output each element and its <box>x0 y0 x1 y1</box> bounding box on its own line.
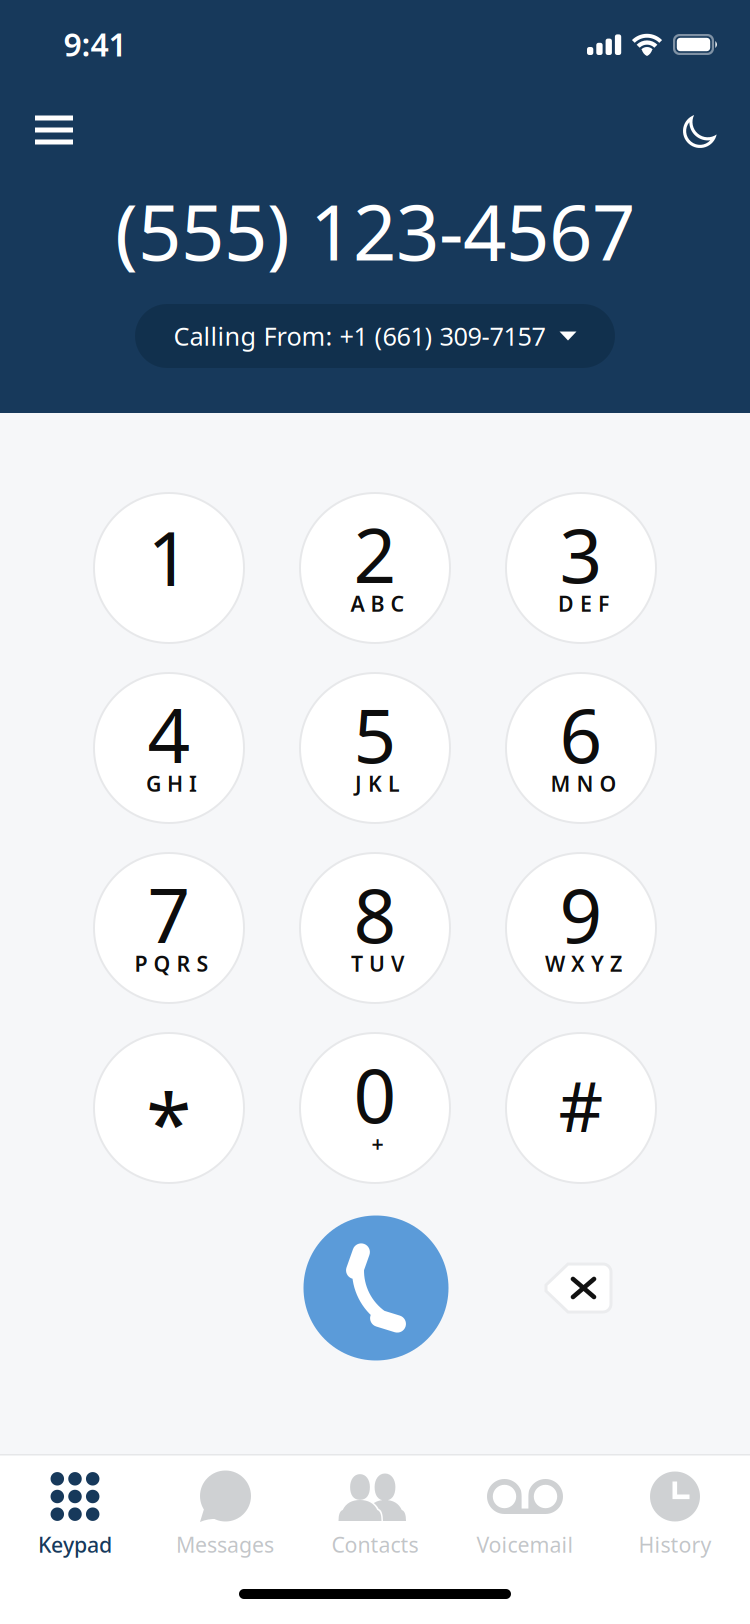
staticText: + <box>371 1129 383 1158</box>
staticText: 4 <box>147 684 190 784</box>
staticText: 9:41 <box>63 23 126 65</box>
button[interactable]: 6 <box>506 673 656 823</box>
button[interactable]: Menu <box>13 93 95 166</box>
button[interactable]: * <box>94 1033 244 1183</box>
staticText: History <box>638 1530 711 1559</box>
button[interactable]: 5 <box>300 673 450 823</box>
button[interactable]: History <box>600 1455 750 1565</box>
button[interactable]: Keypad <box>0 1455 150 1565</box>
button[interactable]: Delete <box>535 1254 621 1322</box>
button[interactable]: # <box>506 1033 656 1183</box>
staticText: 0 <box>353 1044 396 1144</box>
staticText: ABC <box>350 589 404 618</box>
button[interactable]: 7 <box>94 853 244 1003</box>
staticText: 7 <box>147 864 190 964</box>
staticText: (555) 123-4567 <box>115 180 635 281</box>
button[interactable]: Dark mode <box>661 92 739 170</box>
staticText: # <box>558 1059 603 1151</box>
staticText: 9 <box>559 864 602 964</box>
staticText: 2 <box>353 504 396 604</box>
button[interactable]: Contacts <box>300 1455 450 1565</box>
button[interactable]: 4 <box>94 673 244 823</box>
button[interactable]: Call <box>303 1215 448 1360</box>
staticText: DEF <box>558 589 609 618</box>
button[interactable]: 3 <box>506 493 656 643</box>
staticText: 5 <box>353 684 396 784</box>
staticText: TUV <box>351 949 404 978</box>
staticText: 1 <box>147 507 190 607</box>
button[interactable]: Messages <box>150 1455 300 1565</box>
button[interactable]: Voicemail <box>450 1455 600 1565</box>
button[interactable]: 0 <box>300 1033 450 1183</box>
button[interactable]: 2 <box>300 493 450 643</box>
staticText: Messages <box>176 1530 274 1559</box>
staticText: Voicemail <box>476 1530 573 1559</box>
staticText: GHI <box>146 769 197 798</box>
staticText: * <box>146 1067 192 1177</box>
staticText: Calling From: +1 (661) 309-7157 <box>173 319 545 353</box>
staticText: WXYZ <box>545 949 622 978</box>
staticText: 3 <box>559 504 602 604</box>
button[interactable]: 1 <box>94 493 244 643</box>
staticText: JKL <box>355 769 400 798</box>
staticText: 6 <box>559 684 602 784</box>
staticText: 8 <box>353 864 396 964</box>
button[interactable]: 9 <box>506 853 656 1003</box>
staticText: Contacts <box>331 1530 418 1559</box>
staticText: Keypad <box>38 1530 112 1559</box>
button[interactable]: Calling From: +1 (661) 309-7157 <box>135 304 615 368</box>
button[interactable]: 8 <box>300 853 450 1003</box>
staticText: MNO <box>550 769 616 798</box>
staticText: PQRS <box>134 949 208 978</box>
